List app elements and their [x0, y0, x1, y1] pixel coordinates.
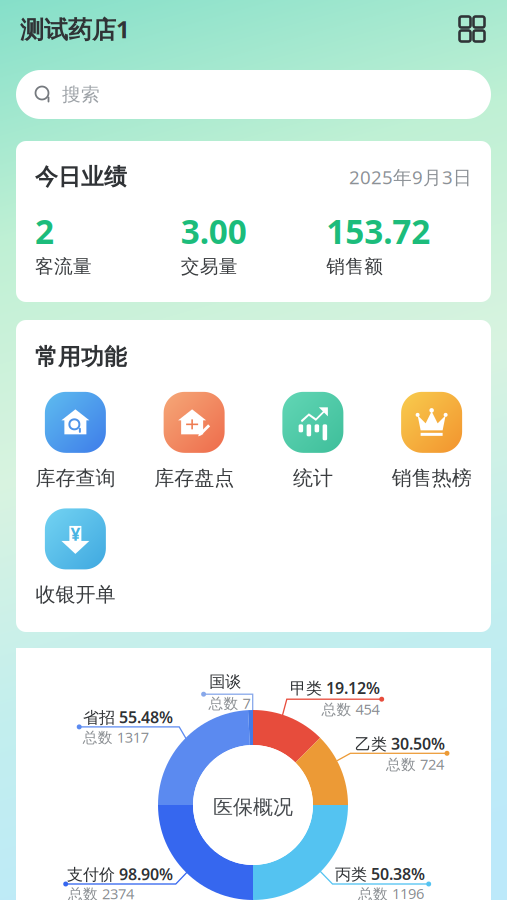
staticText: 总数 2374 [68, 884, 134, 900]
staticText: 常用功能 [35, 343, 127, 371]
staticText: 总数 1317 [83, 727, 149, 747]
staticText: 153.72 [326, 209, 430, 253]
staticText: 2025年9月3日 [349, 164, 472, 189]
staticText: 测试药店1 [20, 13, 130, 45]
staticText: 库存盘点 [154, 466, 234, 490]
staticText: 总数 7 [208, 693, 250, 713]
staticText: 医保概况 [213, 795, 293, 819]
staticText: 统计 [293, 466, 333, 490]
staticText: 国谈 [209, 672, 241, 691]
staticText: 收银开单 [35, 582, 115, 607]
staticText: 总数 724 [386, 754, 444, 774]
staticText: 2 [35, 209, 54, 253]
staticText: ¥ [70, 522, 80, 545]
staticText: 总数 1196 [358, 884, 424, 900]
button[interactable]: 搜索 [16, 70, 491, 119]
button[interactable]: 统计 [253, 392, 372, 490]
button[interactable]: ¥ [16, 508, 135, 607]
staticText: 库存查询 [35, 466, 115, 490]
button[interactable]: 销售热榜 [372, 392, 491, 490]
button[interactable]: 库存查询 [16, 392, 135, 490]
staticText: 今日业绩 [35, 163, 127, 191]
staticText: 省招 55.48% [83, 706, 173, 728]
staticText: 销售额 [326, 255, 383, 278]
staticText: 交易量 [181, 255, 238, 278]
staticText: 客流量 [35, 255, 92, 278]
staticText: 支付价 98.90% [67, 863, 173, 885]
staticText: 总数 454 [321, 699, 379, 719]
button[interactable]: Scan [457, 14, 487, 44]
staticText: 丙类 50.38% [335, 863, 425, 884]
staticText: 搜索 [62, 83, 100, 106]
staticText: 销售热榜 [392, 466, 472, 490]
button[interactable]: 库存盘点 [135, 392, 254, 490]
staticText: 乙类 30.50% [355, 733, 445, 754]
staticText: 甲类 19.12% [290, 677, 380, 698]
staticText: 3.00 [181, 209, 247, 253]
